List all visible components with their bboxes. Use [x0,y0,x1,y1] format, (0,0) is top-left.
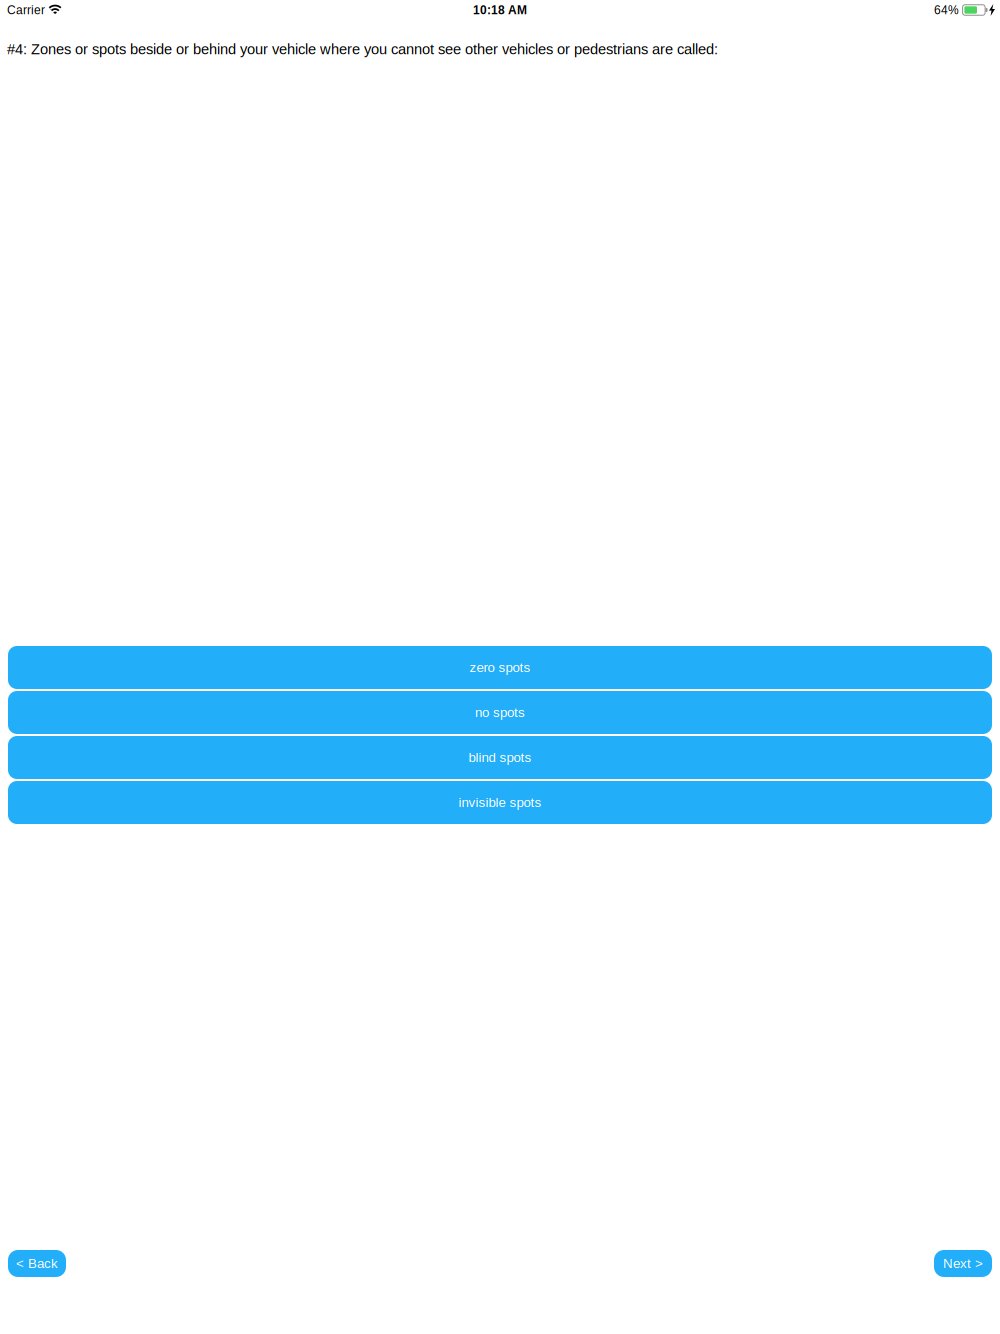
staticText: 64% [934,3,959,17]
staticText: #4: Zones or spots beside or behind your… [7,41,718,57]
staticText: zero spots [469,660,530,675]
staticText: Next > [943,1256,983,1271]
staticText: 10:18 AM [473,3,527,17]
button[interactable]: Next > [934,1250,992,1277]
staticText: < Back [16,1256,58,1271]
button[interactable]: zero spots [8,646,992,689]
button[interactable]: invisible spots [8,781,992,824]
button[interactable]: < Back [8,1250,66,1277]
staticText: no spots [475,705,525,720]
button[interactable]: no spots [8,691,992,734]
staticText: Carrier [7,3,45,17]
staticText: blind spots [468,750,531,765]
button[interactable]: blind spots [8,736,992,779]
staticText: invisible spots [458,795,541,810]
